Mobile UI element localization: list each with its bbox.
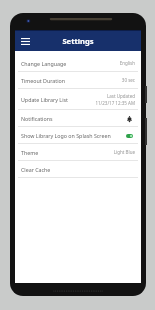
staticText: 11/23/17 12:35 AM — [95, 100, 135, 106]
staticText: Change Language — [21, 60, 67, 67]
button[interactable]: Timeout Duration — [15, 72, 141, 88]
staticText: 30 sec — [121, 77, 135, 83]
button[interactable]: Change Language — [15, 55, 141, 71]
staticText: Last Updated — [106, 93, 135, 99]
button[interactable]: Notification settings — [124, 113, 135, 124]
staticText: Light Blue — [113, 149, 135, 155]
button[interactable]: Clear Cache — [15, 161, 141, 177]
staticText: Timeout Duration — [21, 77, 65, 84]
button[interactable]: Show Library Logo on Splash Screen — [15, 127, 141, 143]
staticText: Clear Cache — [21, 166, 51, 173]
staticText: English — [119, 60, 135, 66]
button[interactable]: Show library logo on splash screen toggl… — [124, 130, 135, 141]
staticText: Theme — [21, 149, 39, 156]
staticText: Notifications — [21, 115, 53, 122]
staticText: Update Library List — [21, 96, 68, 103]
button[interactable]: Open navigation menu — [18, 34, 32, 48]
staticText: Settings — [62, 36, 94, 46]
button[interactable]: Update Library List — [15, 89, 141, 109]
staticText: Show Library Logo on Splash Screen — [21, 132, 111, 139]
button[interactable]: Notifications — [15, 110, 141, 126]
button[interactable]: Theme — [15, 144, 141, 160]
